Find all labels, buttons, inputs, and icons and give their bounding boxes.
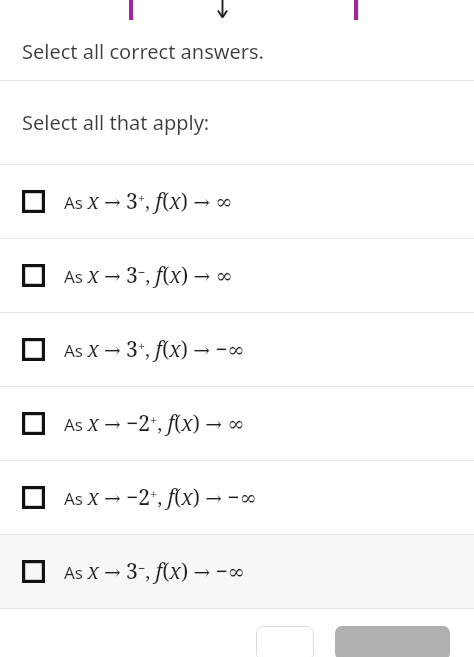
staticText: As x → −2+, f(x) → ∞ bbox=[64, 409, 245, 438]
button[interactable]: Checkbox, unchecked bbox=[0, 387, 474, 460]
other: Checkbox, unchecked bbox=[22, 412, 45, 435]
staticText: As x → 3+, f(x) → −∞ bbox=[64, 335, 245, 364]
other: Checkbox, unchecked bbox=[22, 190, 45, 213]
other: Checkbox, unchecked bbox=[22, 338, 45, 361]
staticText: As x → 3−, f(x) → −∞ bbox=[64, 557, 246, 586]
button[interactable]: Checkbox, unchecked bbox=[0, 239, 474, 312]
staticText: Select all that apply: bbox=[22, 109, 210, 136]
other: Checkbox, unchecked bbox=[22, 486, 45, 509]
staticText: Select all correct answers. bbox=[22, 38, 264, 65]
button[interactable]: Checkbox, unchecked bbox=[0, 313, 474, 386]
staticText: As x → 3−, f(x) → ∞ bbox=[64, 261, 233, 290]
staticText: As x → −2+, f(x) → −∞ bbox=[64, 483, 257, 512]
other: Checkbox, unchecked bbox=[22, 560, 45, 583]
button[interactable]: Submit bbox=[335, 626, 450, 657]
button[interactable]: Checkbox, unchecked bbox=[0, 461, 474, 534]
staticText: As x → 3+, f(x) → ∞ bbox=[64, 187, 233, 216]
button[interactable]: Secondary action bbox=[256, 626, 314, 657]
other: Checkbox, unchecked bbox=[22, 264, 45, 287]
button[interactable]: Checkbox, unchecked bbox=[0, 535, 474, 608]
button[interactable]: Checkbox, unchecked bbox=[0, 165, 474, 238]
